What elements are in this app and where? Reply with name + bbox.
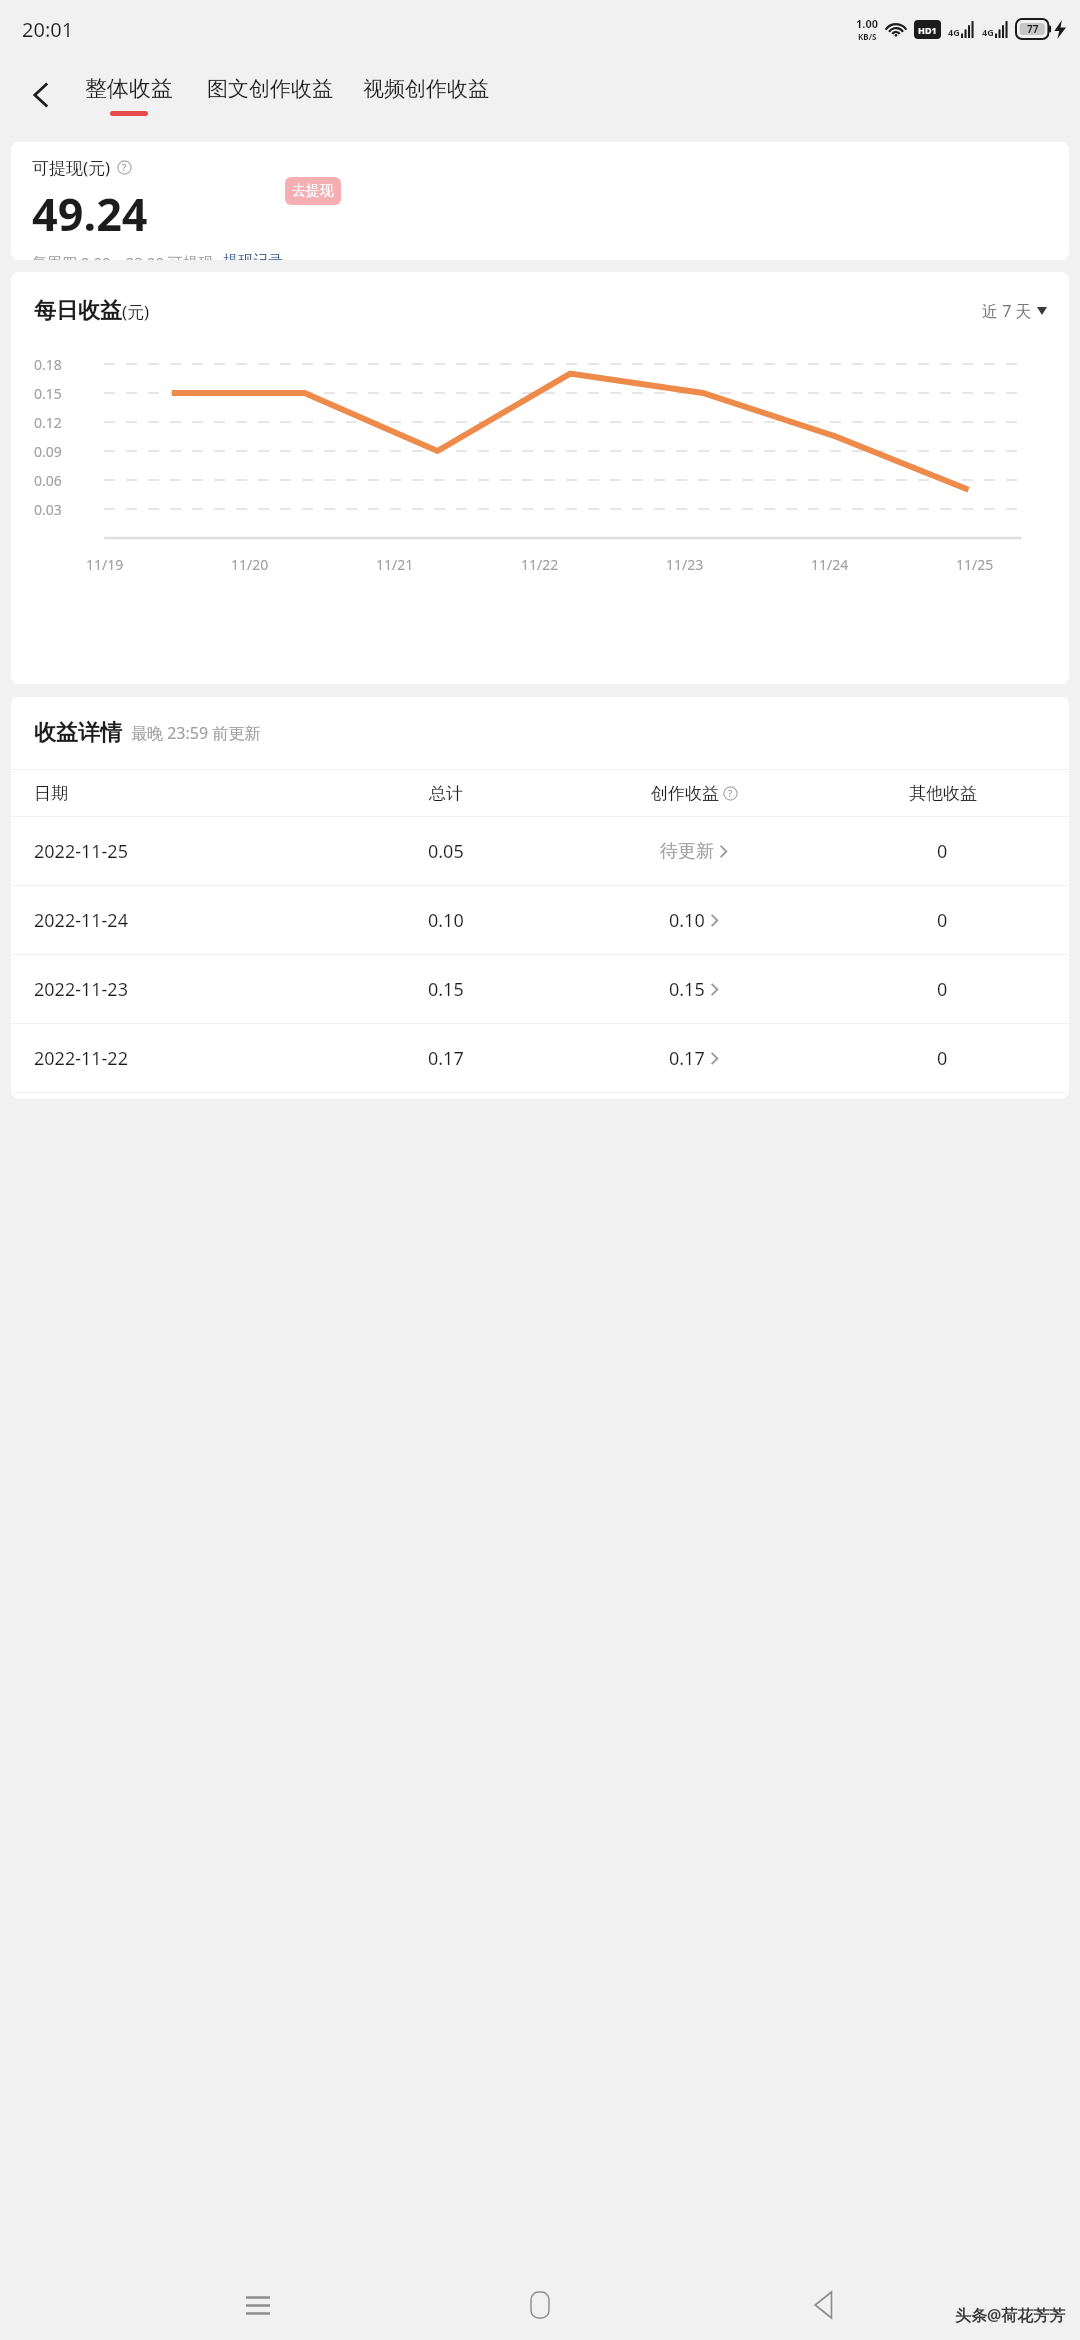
button[interactable]: 2022-11-25 — [11, 817, 1069, 885]
staticText: ? — [728, 787, 733, 800]
staticText: 11/20 — [231, 555, 269, 574]
staticText: 0 — [937, 977, 948, 1002]
button[interactable]: 图文创作收益 — [204, 74, 336, 117]
staticText: 每日收益 — [34, 297, 122, 325]
staticText: 0.15 — [34, 384, 62, 403]
staticText: 每周四 9:00～23:00 可提现 — [32, 252, 213, 260]
staticText: 0.03 — [34, 500, 62, 519]
staticText: 77 — [1027, 22, 1039, 36]
staticText: 近 7 天 — [982, 300, 1032, 322]
staticText: 其他收益 — [909, 783, 977, 804]
button[interactable]: Back — [16, 70, 66, 120]
button[interactable]: 提现记录 — [223, 252, 283, 260]
staticText: 0.17 — [669, 1046, 705, 1071]
staticText: 0.10 — [669, 908, 705, 933]
staticText: 2022-11-25 — [34, 839, 128, 864]
staticText: 0 — [937, 1046, 948, 1071]
staticText: 2022-11-22 — [34, 1046, 128, 1071]
button[interactable]: Back — [798, 2280, 848, 2330]
staticText: 11/21 — [376, 555, 414, 574]
staticText: 创作收益 — [651, 783, 719, 804]
staticText: 头条@荷花芳芳 — [955, 2304, 1066, 2326]
staticText: 0.05 — [428, 839, 464, 864]
staticText: 4G — [982, 26, 994, 38]
staticText: 0.15 — [428, 977, 464, 1002]
staticText: 总计 — [429, 783, 463, 804]
staticText: 图文创作收益 — [207, 76, 333, 102]
staticText: 4G — [948, 26, 960, 38]
button[interactable]: Home — [515, 2280, 565, 2330]
staticText: 11/19 — [86, 555, 124, 574]
button[interactable]: 近 7 天 — [982, 300, 1047, 322]
staticText: 11/22 — [521, 555, 559, 574]
button[interactable]: 2022-11-24 — [11, 886, 1069, 954]
staticText: 0.18 — [34, 355, 62, 374]
button[interactable]: 2022-11-23 — [11, 955, 1069, 1023]
button[interactable]: Recents — [233, 2280, 283, 2330]
staticText: 0.10 — [428, 908, 464, 933]
staticText: 待更新 — [660, 840, 714, 863]
staticText: KB/S — [858, 31, 877, 42]
staticText: 0.15 — [669, 977, 705, 1002]
button[interactable]: 2022-11-22 — [11, 1024, 1069, 1092]
staticText: 整体收益 — [85, 75, 173, 103]
staticText: 1.00 — [856, 16, 878, 31]
staticText: 视频创作收益 — [363, 76, 489, 102]
staticText: 最晚 23:59 前更新 — [131, 722, 261, 744]
staticText: 0 — [937, 908, 948, 933]
staticText: 去提现 — [292, 182, 334, 200]
staticText: 收益详情 — [34, 719, 122, 747]
staticText: 提现记录 — [223, 252, 283, 260]
staticText: 日期 — [34, 783, 68, 804]
staticText: 2022-11-23 — [34, 977, 128, 1002]
staticText: 11/23 — [666, 555, 704, 574]
staticText: 0 — [937, 839, 948, 864]
staticText: 11/25 — [956, 555, 994, 574]
staticText: 49.24 — [32, 183, 148, 244]
staticText: 20:01 — [22, 16, 74, 43]
button[interactable]: 整体收益 — [82, 73, 176, 118]
staticText: 0.12 — [34, 413, 62, 432]
staticText: 11/24 — [811, 555, 849, 574]
staticText: 0.09 — [34, 442, 62, 461]
staticText: (元) — [122, 300, 150, 323]
button[interactable]: 视频创作收益 — [360, 74, 492, 117]
staticText: 2022-11-24 — [34, 908, 128, 933]
staticText: 0.06 — [34, 471, 62, 490]
button[interactable]: 去提现 — [285, 177, 341, 205]
staticText: 0.17 — [428, 1046, 464, 1071]
staticText: 可提现(元) — [32, 156, 111, 179]
staticText: ? — [122, 161, 127, 174]
staticText: HD1 — [918, 24, 937, 36]
